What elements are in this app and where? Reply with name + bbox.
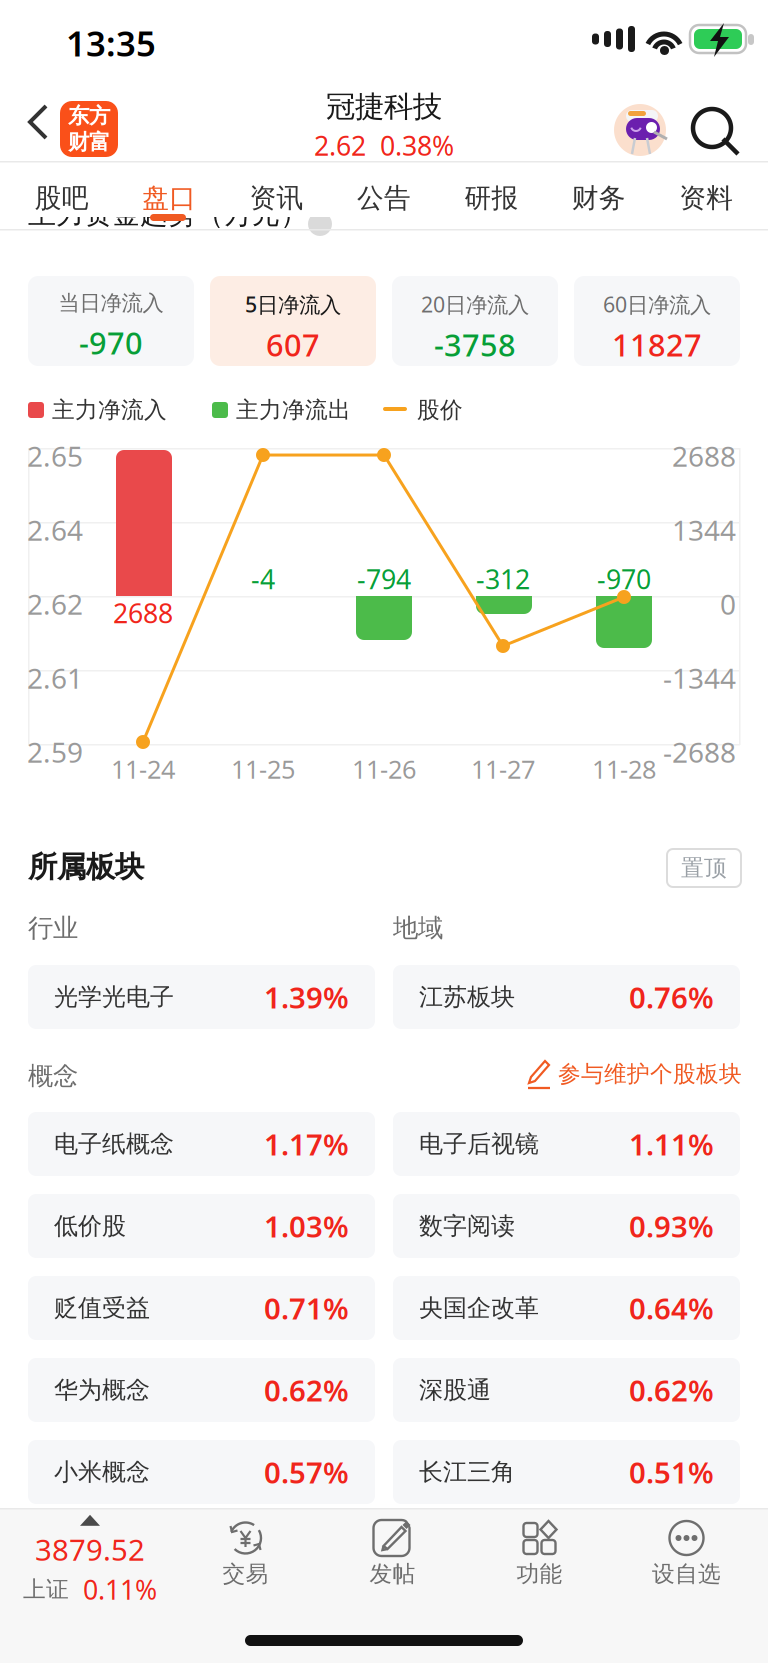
staticText: 1344 <box>672 511 736 549</box>
staticText: 0.62% <box>264 1370 349 1409</box>
staticText: 资料 <box>679 182 733 214</box>
button[interactable]: Shanghai Index <box>0 1508 768 1663</box>
staticText: 607 <box>266 324 320 365</box>
staticText: 2.62 <box>314 128 366 163</box>
button[interactable]: 5日净流入 <box>210 276 376 366</box>
button[interactable]: 光学光电子 <box>28 965 375 1029</box>
staticText: 功能 <box>516 1560 562 1588</box>
button[interactable]: 华为概念 <box>28 1358 375 1422</box>
staticText: 所属板块 <box>28 849 144 885</box>
staticText: 东方 <box>68 103 110 129</box>
button[interactable]: 20日净流入 <box>392 276 558 366</box>
button[interactable]: 研报 <box>438 175 545 221</box>
staticText: 11-26 <box>352 752 416 786</box>
staticText: 研报 <box>464 182 518 214</box>
button[interactable]: 发帖 <box>319 1518 466 1612</box>
button[interactable]: 参与维护个股板块 <box>0 0 768 1663</box>
button[interactable]: 贬值受益 <box>28 1276 375 1340</box>
staticText: 2.62 <box>27 585 83 623</box>
button[interactable]: 60日净流入 <box>574 276 740 366</box>
staticText: 小米概念 <box>54 1457 150 1487</box>
button[interactable]: 资料 <box>653 175 760 221</box>
staticText: 江苏板块 <box>419 982 515 1012</box>
staticText: -312 <box>476 561 530 597</box>
staticText: 5日净流入 <box>245 290 341 318</box>
button[interactable]: 交易 <box>172 1518 319 1612</box>
staticText: 11-27 <box>471 752 535 786</box>
button[interactable]: 财务 <box>545 175 652 221</box>
staticText: 设自选 <box>652 1560 721 1588</box>
staticText: 参与维护个股板块 <box>558 1060 742 1088</box>
staticText: -2688 <box>663 733 736 771</box>
button[interactable]: 数字阅读 <box>393 1194 740 1258</box>
button[interactable]: 股吧 <box>8 175 115 221</box>
button[interactable]: 深股通 <box>393 1358 740 1422</box>
staticText: 公告 <box>357 182 411 214</box>
staticText: 2688 <box>113 595 173 631</box>
staticText: 交易 <box>222 1560 268 1588</box>
staticText: 长江三角 <box>419 1457 515 1487</box>
staticText: 1.11% <box>629 1124 714 1163</box>
button[interactable]: 当日净流入 <box>28 276 194 366</box>
staticText: 主力净流入 <box>52 396 167 424</box>
staticText: 贬值受益 <box>54 1293 150 1323</box>
staticText: 盘口 <box>142 182 196 214</box>
button[interactable]: East Money <box>0 82 768 162</box>
button[interactable]: 设自选 <box>613 1518 760 1612</box>
staticText: 3879.52 <box>35 1530 145 1569</box>
staticText: 上证 <box>23 1576 69 1603</box>
staticText: 地域 <box>393 912 443 943</box>
staticText: 电子后视镜 <box>419 1129 539 1159</box>
staticText: 主力资金趋势（万元） <box>28 197 308 231</box>
staticText: 0 <box>720 585 736 623</box>
staticText: 冠捷科技 <box>326 89 442 125</box>
staticText: 11-28 <box>592 752 656 786</box>
staticText: 11-25 <box>231 752 295 786</box>
staticText: 行业 <box>28 912 78 943</box>
button[interactable]: 低价股 <box>28 1194 375 1258</box>
staticText: 11-24 <box>111 752 175 786</box>
staticText: 股吧 <box>35 182 89 214</box>
staticText: 2.59 <box>27 733 83 771</box>
button[interactable]: Back <box>0 82 768 162</box>
staticText: 0.57% <box>264 1452 349 1491</box>
staticText: 0.38% <box>380 128 454 163</box>
staticText: 资讯 <box>250 182 304 214</box>
button[interactable]: Search <box>0 82 768 162</box>
button[interactable]: 资讯 <box>223 175 330 221</box>
button[interactable]: AI assistant <box>0 82 768 162</box>
staticText: 2.61 <box>27 659 83 697</box>
staticText: 主力净流出 <box>236 396 351 424</box>
button[interactable]: 央国企改革 <box>393 1276 740 1340</box>
staticText: -3758 <box>434 324 516 365</box>
staticText: 数字阅读 <box>419 1211 515 1241</box>
staticText: -970 <box>79 322 143 363</box>
staticText: 0.62% <box>629 1370 714 1409</box>
button[interactable]: 电子纸概念 <box>28 1112 375 1176</box>
staticText: 华为概念 <box>54 1375 150 1405</box>
staticText: 2688 <box>672 437 736 475</box>
button[interactable]: 电子后视镜 <box>393 1112 740 1176</box>
staticText: 股价 <box>417 396 463 424</box>
staticText: -4 <box>251 561 275 597</box>
button[interactable]: 功能 <box>466 1518 613 1612</box>
staticText: 0.93% <box>629 1206 714 1245</box>
staticText: 概念 <box>28 1060 78 1091</box>
button[interactable]: 长江三角 <box>393 1440 740 1504</box>
button[interactable]: 置顶 <box>0 0 768 1663</box>
staticText: 20日净流入 <box>421 290 529 318</box>
button[interactable]: 江苏板块 <box>393 965 740 1029</box>
staticText: 0.64% <box>629 1288 714 1327</box>
button[interactable]: 盘口 <box>115 175 223 221</box>
staticText: 1.39% <box>264 977 349 1016</box>
staticText: 0.71% <box>264 1288 349 1327</box>
staticText: 0.11% <box>83 1572 157 1607</box>
staticText: 深股通 <box>419 1375 491 1405</box>
staticText: -970 <box>597 561 651 597</box>
staticText: 发帖 <box>369 1560 415 1588</box>
staticText: 2.65 <box>27 437 83 475</box>
staticText: 2.64 <box>27 511 83 549</box>
button[interactable]: 公告 <box>330 175 438 221</box>
staticText: -1344 <box>663 659 736 697</box>
button[interactable]: 小米概念 <box>28 1440 375 1504</box>
